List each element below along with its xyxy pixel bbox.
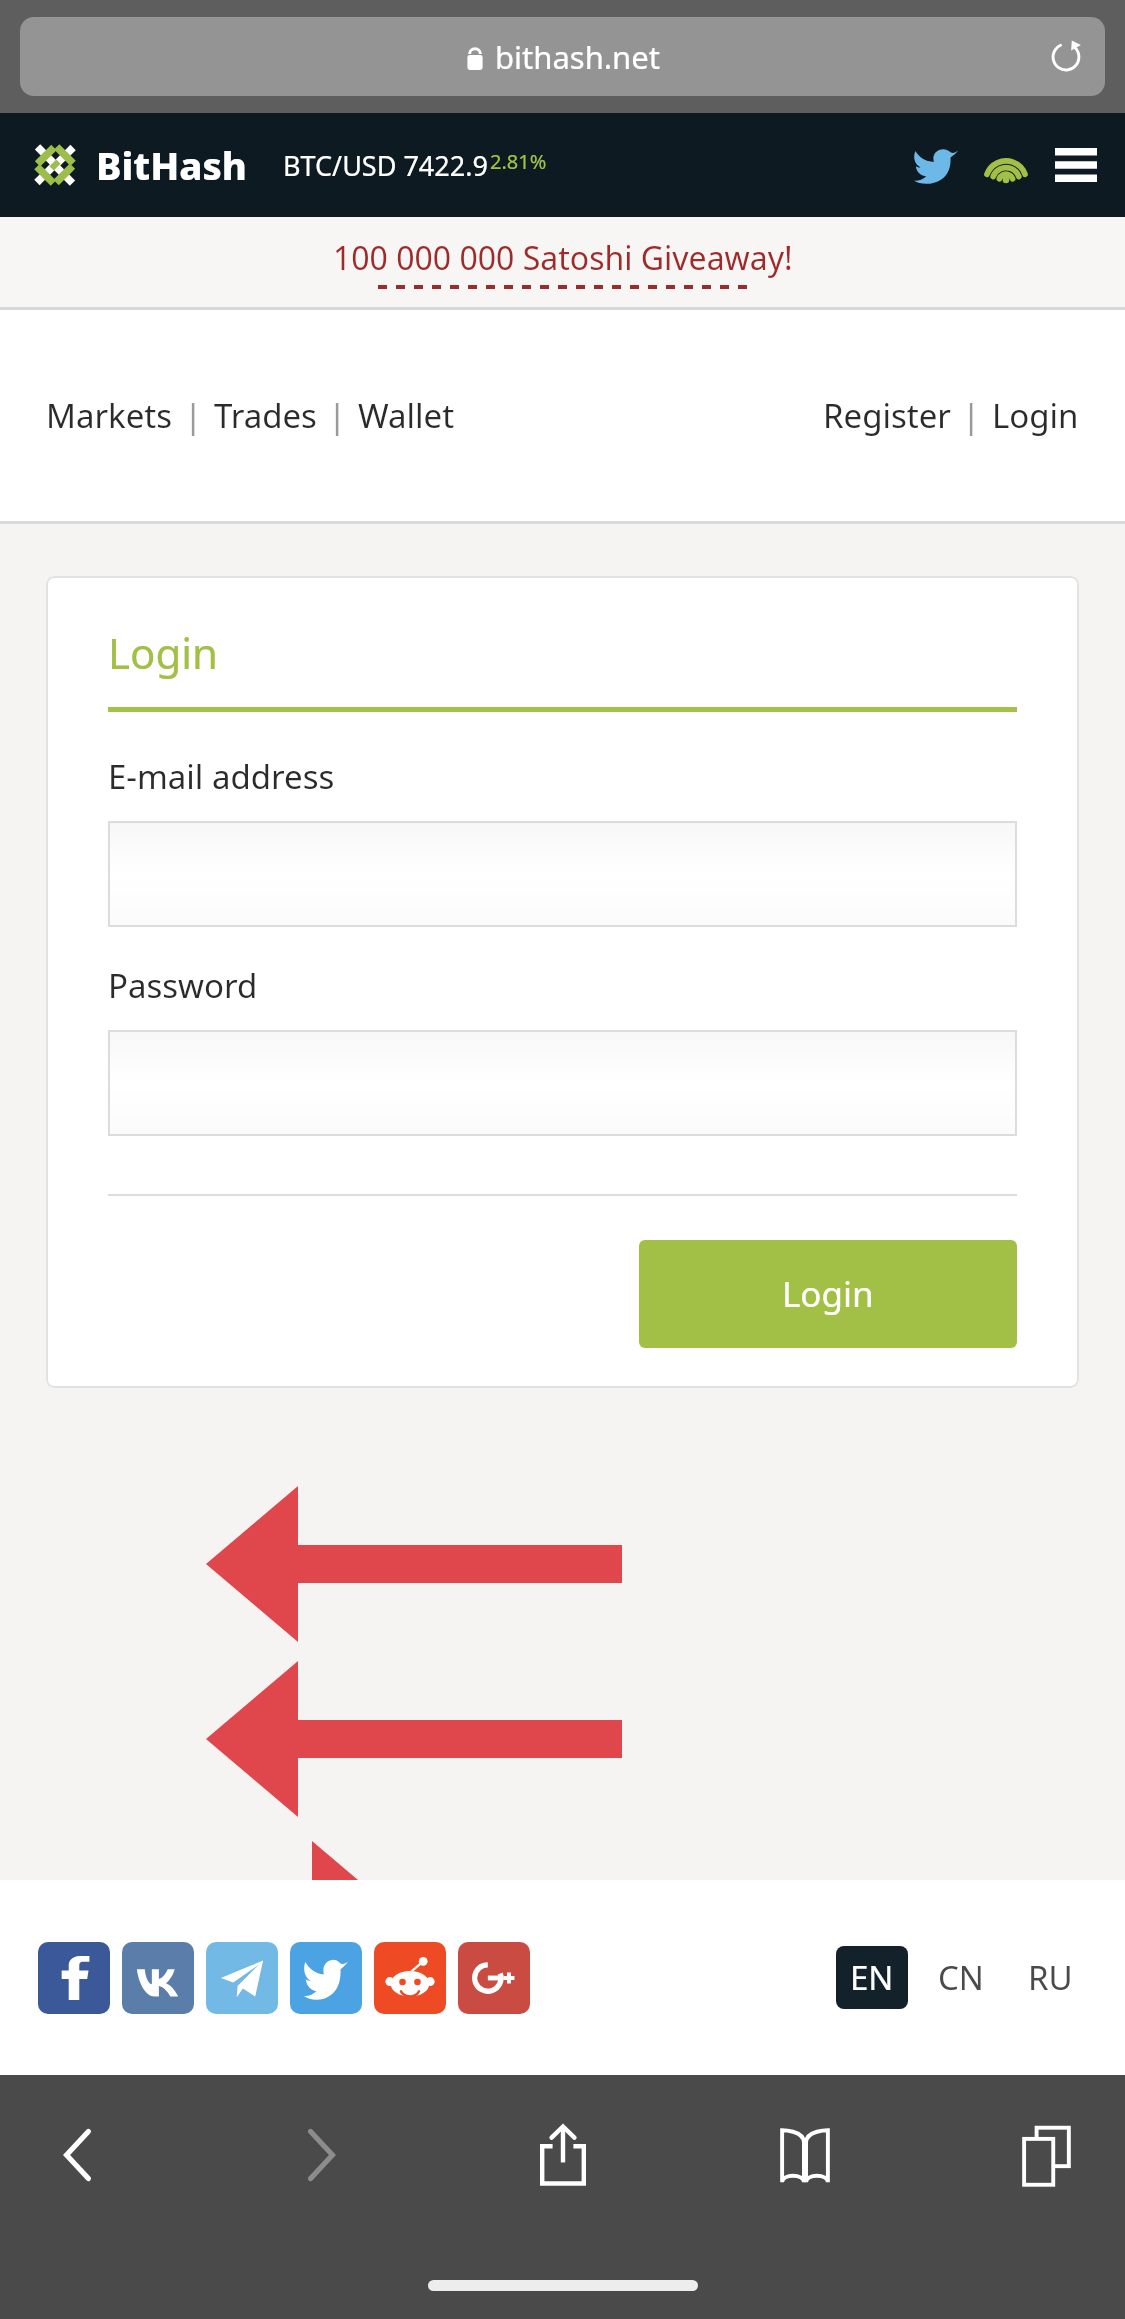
button[interactable]: Trades [214, 387, 317, 444]
button[interactable]: Reddit [374, 1942, 446, 2014]
staticText: Wallet [358, 393, 455, 438]
button[interactable]: Login [639, 1240, 1017, 1348]
button[interactable]: Wallet [358, 387, 455, 444]
button[interactable]: Status [979, 138, 1033, 192]
button[interactable]: RU [1014, 1946, 1087, 2009]
staticText: bithash.net [495, 36, 660, 78]
staticText: BitHash [96, 139, 247, 191]
button[interactable]: Back [30, 2107, 126, 2203]
button[interactable]: EN [836, 1946, 908, 2009]
button[interactable]: Tabs [999, 2107, 1095, 2203]
button[interactable]: Menu [1049, 138, 1103, 192]
staticText: | [962, 393, 981, 438]
staticText: E-mail address [108, 754, 335, 799]
staticText: Login [108, 624, 219, 681]
button[interactable]: Twitter [290, 1942, 362, 2014]
staticText: BTC/USD 7422.9 [283, 147, 488, 184]
button[interactable]: Login [992, 387, 1079, 444]
staticText: | [184, 393, 203, 438]
button[interactable]: BitHash [26, 136, 247, 194]
button[interactable]: Google Plus [458, 1942, 530, 2014]
button[interactable]: VKontakte [122, 1942, 194, 2014]
button[interactable]: Reload [1043, 34, 1089, 80]
staticText: 100 000 000 Satoshi Giveaway! [333, 236, 793, 280]
staticText: 2.81% [490, 148, 547, 175]
button[interactable]: CN [924, 1946, 998, 2009]
button[interactable]: 100 000 000 Satoshi Giveaway! [0, 217, 1125, 307]
button[interactable]: Share [515, 2107, 611, 2203]
staticText: Trades [214, 393, 317, 438]
staticText: CN [938, 1955, 984, 2000]
button[interactable]: Facebook [38, 1942, 110, 2014]
button[interactable] [108, 821, 1017, 927]
staticText: EN [850, 1955, 894, 2000]
button[interactable] [108, 1030, 1017, 1136]
staticText: Login [992, 393, 1079, 438]
button[interactable]: bithash.net [20, 17, 1105, 96]
button[interactable]: Twitter [909, 138, 963, 192]
button[interactable]: Bookmarks [757, 2107, 853, 2203]
button[interactable]: Telegram [206, 1942, 278, 2014]
button[interactable]: Forward [273, 2107, 369, 2203]
staticText: RU [1028, 1955, 1073, 2000]
button[interactable]: Markets [46, 387, 173, 444]
staticText: Login [782, 1270, 874, 1318]
staticText: Markets [46, 393, 173, 438]
staticText: | [328, 393, 347, 438]
staticText: Password [108, 963, 258, 1008]
button[interactable]: Register [823, 387, 951, 444]
staticText: Register [823, 393, 951, 438]
